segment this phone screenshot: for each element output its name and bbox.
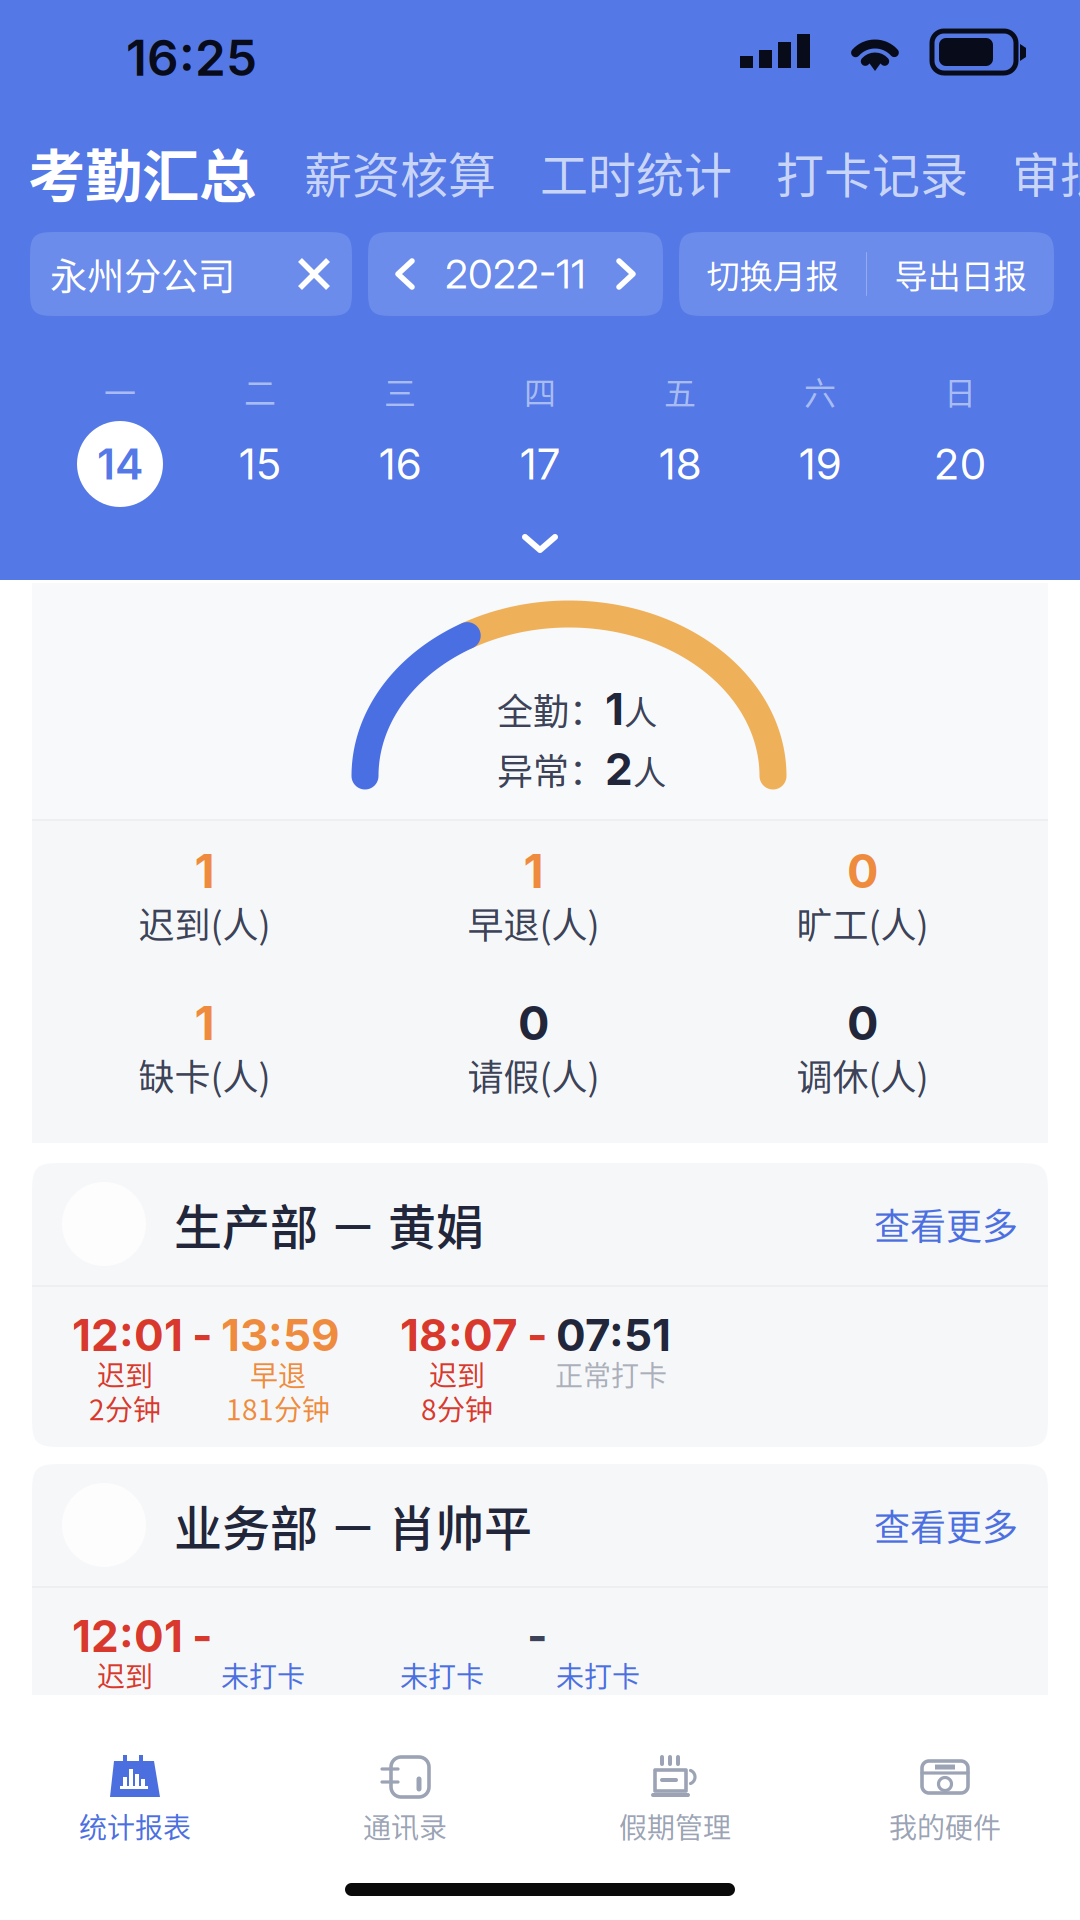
staticText: 通讯录: [363, 1859, 447, 1899]
button[interactable]: 我的硬件: [810, 1798, 1080, 1908]
staticText: 四: [524, 368, 556, 414]
button[interactable]: 通讯录: [270, 1798, 540, 1908]
button[interactable]: 薪资核算: [282, 128, 518, 216]
staticText: 二: [244, 368, 276, 414]
staticText: 迟到(人): [138, 897, 270, 949]
staticText: -: [192, 1609, 213, 1663]
staticText: -: [527, 1308, 548, 1362]
button[interactable]: 14: [50, 414, 190, 514]
staticText: 人: [633, 746, 666, 795]
staticText: 假期管理: [619, 1806, 731, 1846]
staticText: 一: [104, 368, 136, 414]
staticText: 五: [664, 368, 696, 414]
button[interactable]: 19: [750, 414, 890, 514]
staticText: 迟到: [97, 1655, 153, 1695]
staticText: 15: [238, 438, 281, 490]
staticText: 2分钟: [89, 1388, 161, 1428]
staticText: 缺卡(人): [138, 1049, 270, 1101]
staticText: 查看更多: [874, 1499, 1018, 1551]
button[interactable]: 导出日报: [867, 232, 1054, 316]
staticText: 12:01: [72, 1609, 183, 1663]
button[interactable]: 18: [610, 414, 750, 514]
button[interactable]: 生产部 － 黄娟: [32, 1163, 1048, 1285]
staticText: 12:01: [72, 1308, 183, 1362]
staticText: 14: [97, 438, 143, 490]
staticText: 我的硬件: [889, 1806, 1001, 1846]
staticText: 请假(人): [467, 1049, 599, 1101]
staticText: 统计报表: [79, 1806, 191, 1846]
staticText: 13:59: [221, 1308, 340, 1362]
button[interactable]: 业务部 － 肖帅平: [32, 1464, 1048, 1586]
staticText: 假期管理: [619, 1859, 731, 1899]
staticText: 07:51: [556, 1308, 671, 1362]
staticText: 调休(人): [796, 1049, 928, 1101]
staticText: 1: [194, 995, 214, 1051]
staticText: 工时统计: [540, 137, 732, 207]
staticText: 16:25: [126, 28, 257, 88]
staticText: 迟到: [429, 1354, 485, 1394]
staticText: 生产部 － 黄娟: [174, 1189, 484, 1259]
button[interactable]: 统计报表: [0, 1745, 270, 1855]
staticText: 0: [847, 995, 878, 1051]
button[interactable]: 假期管理: [540, 1798, 810, 1908]
button[interactable]: 打卡记录: [754, 128, 990, 216]
staticText: 181分钟: [226, 1388, 330, 1428]
staticText: 早退(人): [467, 897, 599, 949]
staticText: 2: [605, 742, 633, 796]
staticText: -: [527, 1609, 548, 1663]
button[interactable]: 17: [470, 414, 610, 514]
staticText: 审批: [1012, 137, 1080, 207]
staticText: 通讯录: [363, 1806, 447, 1846]
staticText: 18: [658, 438, 701, 490]
button[interactable]: 假期管理: [540, 1745, 810, 1855]
button[interactable]: 永州分公司: [30, 232, 352, 316]
staticText: 正常打卡: [555, 1354, 667, 1394]
staticText: 未打卡: [400, 1655, 484, 1695]
staticText: 16: [378, 438, 421, 490]
staticText: 薪资核算: [304, 137, 496, 207]
staticText: 8分钟: [421, 1388, 493, 1428]
button[interactable]: 工时统计: [518, 128, 754, 216]
button[interactable]: 统计报表: [0, 1798, 270, 1908]
staticText: 1: [605, 682, 624, 736]
staticText: 旷工(人): [796, 897, 928, 949]
staticText: 切换月报: [706, 250, 838, 298]
button[interactable]: 我的硬件: [810, 1745, 1080, 1855]
staticText: 查看更多: [874, 1198, 1018, 1250]
staticText: -: [192, 1308, 213, 1362]
button[interactable]: 通讯录: [270, 1745, 540, 1855]
button[interactable]: 2022-11: [368, 232, 663, 316]
staticText: 日: [944, 368, 976, 414]
button[interactable]: 展开日历: [470, 514, 610, 572]
staticText: 三: [384, 368, 416, 414]
staticText: 未打卡: [556, 1655, 640, 1695]
button[interactable]: 考勤汇总: [0, 128, 282, 216]
button[interactable]: 切换月报: [679, 232, 866, 316]
staticText: 19: [798, 438, 841, 490]
staticText: 0: [847, 843, 878, 899]
staticText: 1: [523, 843, 543, 899]
button[interactable]: 16: [330, 414, 470, 514]
staticText: 导出日报: [894, 250, 1026, 298]
staticText: 永州分公司: [50, 247, 235, 301]
staticText: 异常：: [497, 743, 605, 795]
staticText: 0: [518, 995, 549, 1051]
staticText: 17: [519, 438, 560, 490]
button[interactable]: 20: [890, 414, 1030, 514]
staticText: 早退: [250, 1354, 306, 1394]
staticText: 18:07: [400, 1308, 518, 1362]
staticText: 2分钟: [89, 1689, 161, 1729]
button[interactable]: 审批: [990, 128, 1080, 216]
staticText: 业务部 － 肖帅平: [174, 1490, 532, 1560]
button[interactable]: 15: [190, 414, 330, 514]
staticText: 2022-11: [445, 250, 586, 298]
staticText: 打卡记录: [776, 137, 968, 207]
staticText: 考勤汇总: [28, 130, 256, 213]
staticText: 全勤：: [497, 683, 605, 735]
staticText: 1: [194, 843, 214, 899]
